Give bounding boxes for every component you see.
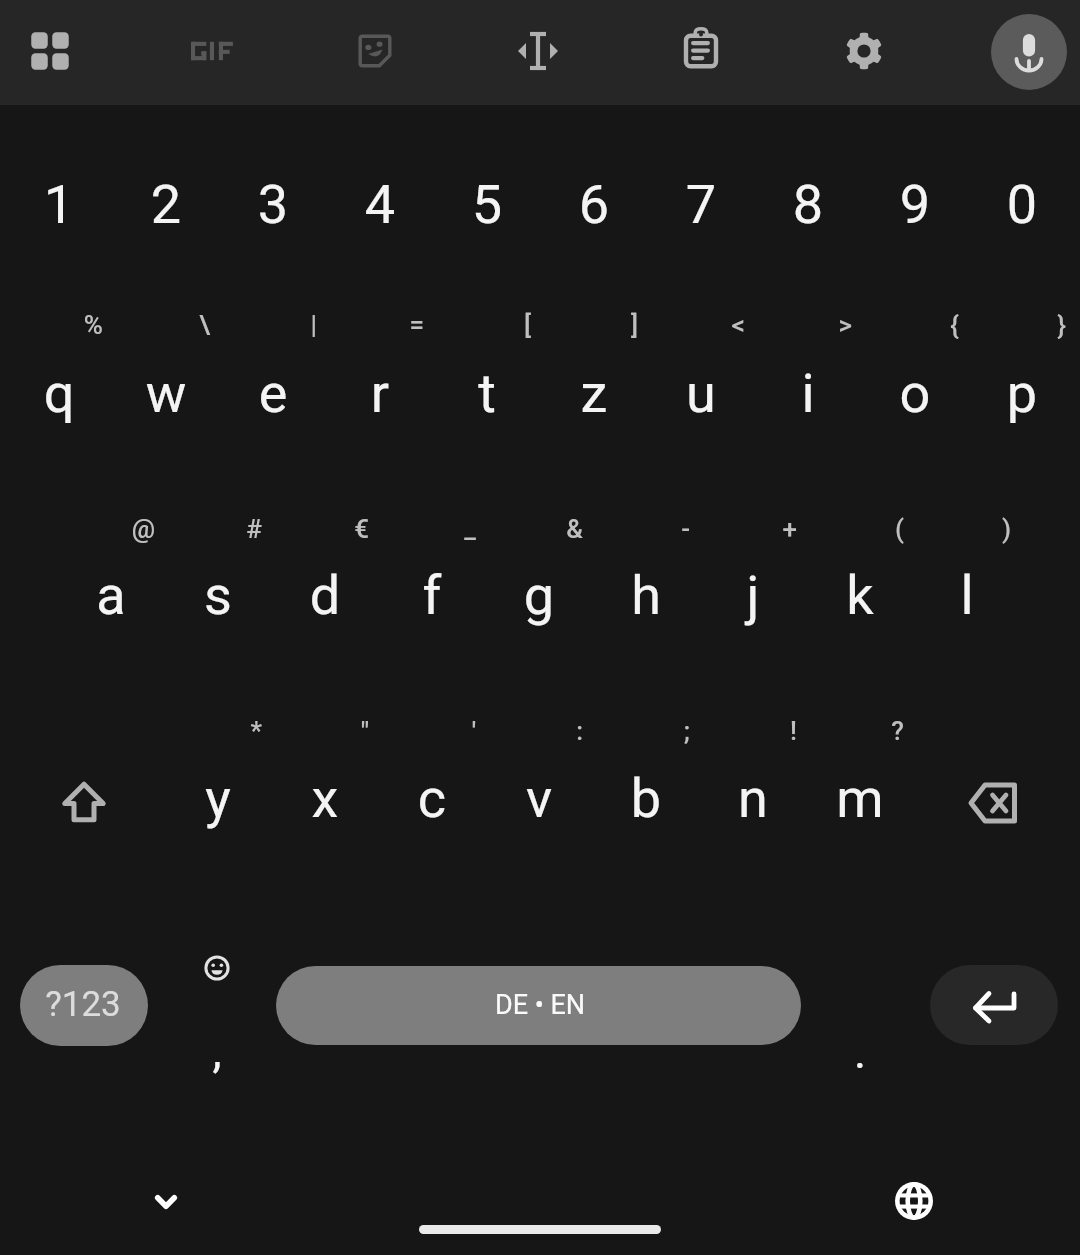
- staticText: s: [88, 564, 348, 632]
- staticText: c: [302, 767, 562, 835]
- button[interactable]: 4: [327, 106, 434, 306]
- button[interactable]: .: [810, 1011, 910, 1101]
- button[interactable]: u: [648, 303, 755, 503]
- staticText: ]: [438, 310, 638, 343]
- button[interactable]: h: [593, 505, 700, 705]
- staticText: j: [623, 564, 883, 632]
- button[interactable]: 3: [220, 106, 327, 306]
- button[interactable]: 8: [755, 106, 862, 306]
- staticText: h: [516, 564, 776, 632]
- button[interactable]: GIF: [164, 3, 260, 99]
- staticText: n: [623, 767, 883, 835]
- button[interactable]: z: [541, 303, 648, 503]
- staticText: l: [837, 564, 1080, 632]
- staticText: a: [0, 564, 241, 632]
- button[interactable]: e: [220, 303, 327, 503]
- staticText: d: [195, 564, 455, 632]
- staticText: ?123: [0, 984, 213, 1028]
- staticText: o: [785, 362, 1045, 430]
- button[interactable]: i: [755, 303, 862, 503]
- staticText: ": [169, 716, 369, 749]
- button[interactable]: 6: [541, 106, 648, 306]
- button[interactable]: Hide keyboard: [111, 1147, 221, 1255]
- button[interactable]: l: [914, 505, 1021, 705]
- staticText: ,: [87, 1024, 347, 1082]
- staticText: 6: [464, 173, 724, 241]
- button[interactable]: k: [807, 505, 914, 705]
- staticText: y: [88, 767, 348, 835]
- button[interactable]: 9: [862, 106, 969, 306]
- button[interactable]: t: [434, 303, 541, 503]
- staticText: 4: [250, 173, 510, 241]
- button[interactable]: y: [165, 708, 272, 908]
- staticText: 2: [36, 173, 296, 241]
- button[interactable]: p: [969, 303, 1076, 503]
- staticText: €: [169, 514, 369, 547]
- staticText: 9: [785, 173, 1045, 241]
- button[interactable]: 0: [969, 106, 1076, 306]
- staticText: %: [0, 310, 103, 343]
- button[interactable]: w: [113, 303, 220, 503]
- button[interactable]: b: [593, 708, 700, 908]
- button[interactable]: 7: [648, 106, 755, 306]
- staticText: ': [276, 716, 476, 749]
- button[interactable]: q: [6, 303, 113, 503]
- staticText: 7: [571, 173, 831, 241]
- button[interactable]: Clipboard: [653, 3, 749, 99]
- button[interactable]: f: [379, 505, 486, 705]
- button[interactable]: Text editing: [490, 3, 586, 99]
- staticText: [: [331, 310, 531, 343]
- button[interactable]: a: [58, 505, 165, 705]
- button[interactable]: Keyboard layouts: [2, 3, 98, 99]
- button[interactable]: Emoji: [167, 923, 267, 1013]
- staticText: p: [892, 362, 1080, 430]
- staticText: t: [357, 362, 617, 430]
- button[interactable]: Stickers: [327, 3, 423, 99]
- staticText: r: [250, 362, 510, 430]
- staticText: |: [117, 310, 317, 343]
- button[interactable]: Shift: [4, 702, 164, 902]
- staticText: z: [464, 362, 724, 430]
- button[interactable]: r: [327, 303, 434, 503]
- button[interactable]: Change language: [859, 1146, 969, 1255]
- button[interactable]: Space: [276, 905, 801, 1105]
- button[interactable]: m: [807, 708, 914, 908]
- button[interactable]: d: [272, 505, 379, 705]
- staticText: v: [409, 767, 669, 835]
- staticText: 5: [357, 173, 617, 241]
- button[interactable]: o: [862, 303, 969, 503]
- staticText: 0: [892, 173, 1080, 241]
- staticText: &: [383, 514, 583, 547]
- button[interactable]: s: [165, 505, 272, 705]
- button[interactable]: n: [700, 708, 807, 908]
- button[interactable]: 2: [113, 106, 220, 306]
- staticText: {: [759, 310, 959, 343]
- staticText: _: [276, 514, 476, 547]
- button[interactable]: ,: [167, 1017, 267, 1107]
- staticText: :: [383, 716, 583, 749]
- staticText: <: [545, 310, 745, 343]
- button[interactable]: j: [700, 505, 807, 705]
- button[interactable]: c: [379, 708, 486, 908]
- staticText: f: [302, 564, 562, 632]
- button[interactable]: x: [272, 708, 379, 908]
- staticText: *: [62, 716, 262, 749]
- staticText: .: [730, 1025, 990, 1083]
- staticText: @: [0, 514, 155, 547]
- button[interactable]: 5: [434, 106, 541, 306]
- button[interactable]: 1: [6, 106, 113, 306]
- staticText: DE • EN: [410, 989, 670, 1023]
- staticText: =: [224, 310, 424, 343]
- staticText: 1: [0, 173, 189, 241]
- button[interactable]: Enter: [914, 905, 1074, 1105]
- button[interactable]: v: [486, 708, 593, 908]
- button[interactable]: Backspace: [913, 703, 1073, 903]
- staticText: 8: [678, 173, 938, 241]
- button[interactable]: g: [486, 505, 593, 705]
- staticText: }: [866, 310, 1066, 343]
- staticText: \: [10, 310, 210, 343]
- button[interactable]: Symbols: [3, 905, 163, 1105]
- staticText: (: [704, 514, 904, 547]
- button[interactable]: Voice input: [991, 14, 1067, 90]
- button[interactable]: Settings: [816, 3, 912, 99]
